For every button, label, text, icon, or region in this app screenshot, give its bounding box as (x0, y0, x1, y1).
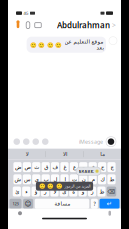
staticText: خ (91, 164, 94, 170)
button[interactable]: Camera (33, 19, 43, 31)
staticText: Abdulrahman (57, 20, 110, 30)
button[interactable]: ش (13, 174, 22, 184)
button[interactable]: ل (51, 174, 59, 184)
button[interactable]: ا (60, 174, 69, 184)
button[interactable]: ظ (97, 187, 105, 197)
staticText: ا (64, 176, 65, 182)
staticText: ي (34, 176, 38, 182)
button[interactable]: ح (98, 162, 106, 172)
staticText: مسافة (54, 201, 70, 207)
staticText: ☺ (25, 200, 32, 208)
staticText: ح (101, 164, 104, 170)
button[interactable]: س (23, 174, 31, 184)
button[interactable]: App (31, 136, 40, 148)
button[interactable]: الا (46, 149, 83, 160)
button[interactable]: Attach (23, 19, 33, 31)
button[interactable]: Record audio (105, 136, 117, 148)
button[interactable]: ة (69, 187, 77, 197)
staticText: > (112, 21, 116, 30)
staticText: ما (100, 151, 105, 157)
button[interactable]: App (12, 136, 21, 148)
staticText: 🙂 (47, 183, 54, 189)
staticText: م (91, 176, 94, 182)
button[interactable]: Abdulrahman (57, 20, 116, 30)
button[interactable]: ع (70, 162, 78, 172)
staticText: ن (81, 176, 85, 182)
staticText: ؤ (34, 188, 37, 195)
staticText: ف (52, 164, 58, 170)
button[interactable]: ئ (13, 187, 21, 197)
button[interactable]: ف (51, 162, 59, 172)
staticText: ت (71, 176, 76, 182)
button[interactable]: App (40, 136, 50, 148)
staticText: لا (53, 188, 56, 195)
staticText: ? (93, 200, 95, 207)
button[interactable]: ض (13, 162, 22, 172)
button[interactable]: ط (107, 174, 116, 184)
staticText: 🙂 (38, 42, 45, 48)
staticText: 🙂 (47, 42, 54, 48)
staticText: موقع التعليم عن بعد (64, 39, 103, 51)
staticText: ق (44, 164, 48, 170)
button[interactable]: ب (42, 174, 50, 184)
button[interactable]: ؤ (31, 187, 40, 197)
staticText: 🙂 (30, 42, 37, 48)
staticText: ئ (15, 188, 19, 195)
button[interactable]: ? (91, 199, 98, 209)
staticText: 🙂 (56, 183, 63, 189)
button[interactable]: ه (79, 162, 87, 172)
button[interactable]: 123 (9, 199, 21, 209)
staticText: ة (72, 188, 75, 195)
staticText: ظ (99, 188, 104, 195)
button[interactable]: Emoji (23, 199, 33, 209)
staticText: ك (100, 176, 104, 182)
staticText: 🙂 (39, 183, 46, 189)
button[interactable]: ق (42, 162, 50, 172)
staticText: س (23, 176, 30, 182)
staticText: ⌫ (107, 188, 115, 195)
button[interactable]: App (21, 136, 31, 148)
staticText: ى (62, 188, 66, 195)
button[interactable]: ك (98, 174, 106, 184)
staticText: ر (43, 188, 46, 195)
staticText: ض (14, 164, 20, 170)
button[interactable]: لا (8, 149, 45, 160)
staticText: ه (82, 164, 85, 170)
staticText: ع (72, 164, 75, 170)
button[interactable]: ت (70, 174, 78, 184)
button[interactable]: م (89, 174, 97, 184)
button[interactable]: ز (88, 187, 96, 197)
button[interactable]: Delete (107, 187, 116, 197)
button[interactable]: Send (99, 199, 119, 209)
button[interactable]: و (78, 187, 87, 197)
button[interactable]: لا (50, 187, 58, 197)
button[interactable]: ى (60, 187, 68, 197)
button[interactable]: ن (79, 174, 87, 184)
button[interactable]: ر (41, 187, 49, 197)
button[interactable]: ء (22, 187, 30, 197)
button[interactable]: ث (32, 162, 40, 172)
button[interactable]: ي (32, 174, 40, 184)
button[interactable]: خ (89, 162, 97, 172)
staticText: ARABIC (78, 168, 94, 174)
staticText: ث (34, 164, 39, 170)
staticText: ص (24, 164, 30, 170)
button[interactable]: Contact info (13, 19, 23, 31)
staticText: الا (62, 151, 66, 157)
staticText: ء (25, 188, 28, 195)
button[interactable]: غ (60, 162, 69, 172)
button[interactable]: ج (107, 162, 116, 172)
button[interactable]: ما (84, 149, 121, 160)
staticText: 4G (23, 10, 28, 16)
button[interactable]: ص (23, 162, 31, 172)
button[interactable]: مسافة (35, 199, 89, 209)
staticText: ش (14, 176, 21, 182)
staticText: و (81, 188, 84, 195)
staticText: ل (53, 176, 57, 182)
staticText: ز (90, 188, 93, 195)
staticText: 123 (12, 201, 18, 206)
staticText: ب (43, 176, 48, 182)
staticText: ج (110, 164, 113, 170)
staticText: لا (25, 151, 28, 157)
staticText: المزيد من الرموز (64, 184, 90, 188)
